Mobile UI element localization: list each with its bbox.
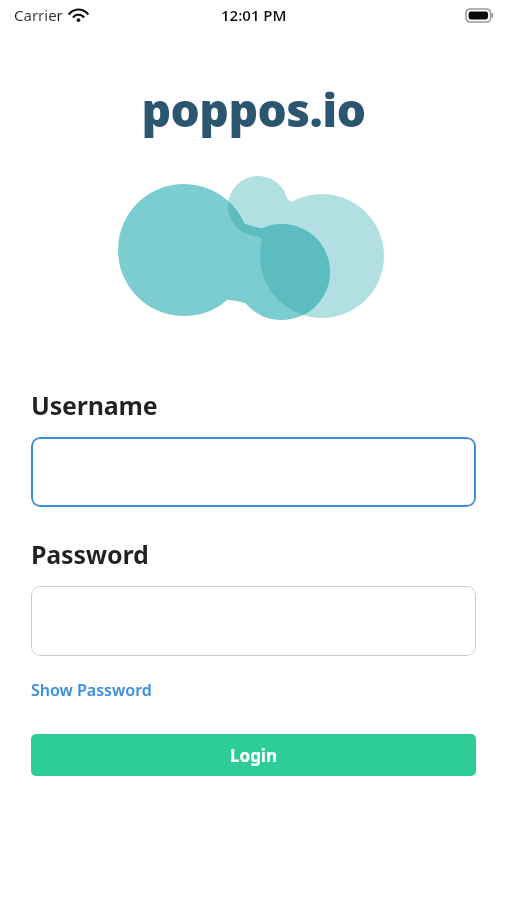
- staticText: Login: [230, 744, 278, 767]
- staticText: Username: [31, 388, 158, 422]
- staticText: Password: [31, 537, 149, 571]
- button[interactable]: [31, 437, 476, 507]
- button[interactable]: Show Password: [31, 675, 152, 705]
- staticText: poppos.io: [0, 78, 507, 141]
- staticText: Show Password: [31, 679, 152, 701]
- staticText: Carrier: [14, 5, 63, 25]
- button[interactable]: Login: [31, 734, 476, 776]
- button[interactable]: [31, 586, 476, 656]
- staticText: 12:01 PM: [221, 5, 287, 25]
